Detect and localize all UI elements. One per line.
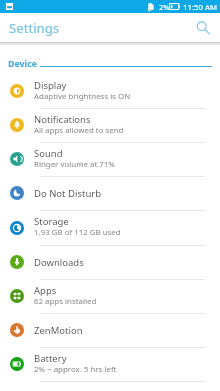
staticText: Do Not Disturb — [34, 187, 102, 200]
button[interactable]: ZenMotion — [0, 314, 220, 348]
button[interactable]: Sound — [0, 143, 220, 177]
button[interactable]: Display — [0, 75, 220, 109]
staticText: 2% — [159, 2, 170, 12]
staticText: Notifications — [34, 113, 91, 126]
staticText: 62 apps installed — [34, 296, 97, 307]
button[interactable]: Notifications — [0, 109, 220, 143]
staticText: Battery — [34, 352, 67, 365]
button[interactable]: Storage — [0, 211, 220, 246]
staticText: Ringer volume at 71% — [34, 159, 115, 170]
button[interactable]: Apps — [0, 280, 220, 314]
staticText: Device — [8, 58, 37, 70]
staticText: All apps allowed to send — [34, 125, 124, 136]
button[interactable]: Search — [191, 16, 215, 40]
staticText: Adaptive brightness is ON — [34, 91, 131, 102]
staticText: ZenMotion — [34, 324, 83, 337]
staticText: 2% ~ approx. 5 hrs left — [34, 364, 117, 375]
staticText: Display — [34, 79, 67, 92]
staticText: Apps — [34, 284, 57, 297]
staticText: Sound — [34, 147, 63, 160]
staticText: Downloads — [34, 256, 84, 269]
button[interactable]: Downloads — [0, 246, 220, 280]
button[interactable]: Battery — [0, 348, 220, 382]
staticText: Storage — [34, 215, 69, 228]
staticText: 1.93 GB of 112 GB used — [34, 227, 121, 238]
button[interactable]: Do Not Disturb — [0, 177, 220, 211]
staticText: 11:50 AM — [183, 2, 218, 13]
staticText: Settings — [9, 19, 60, 37]
